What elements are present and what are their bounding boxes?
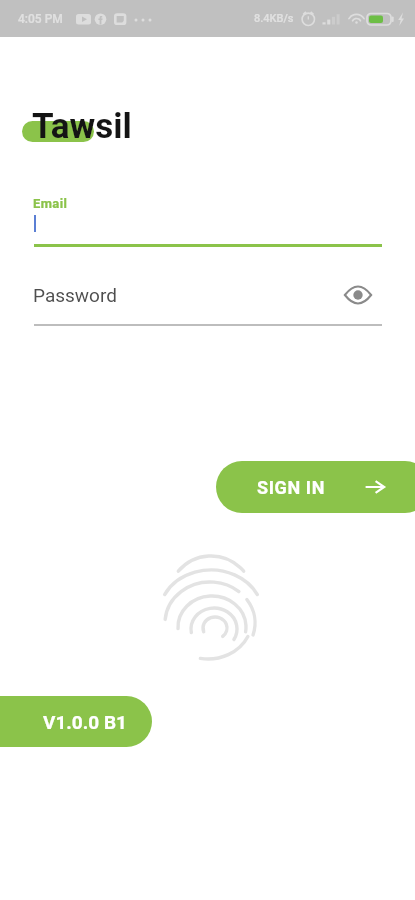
staticText: Password [33,284,117,306]
button[interactable]: Email [34,192,382,247]
staticText: V1.0.0 B1 [43,711,127,733]
button[interactable]: V1.0.0 B1 [0,696,152,747]
staticText: SIGN IN [257,477,325,498]
staticText: Tawsil [32,106,132,147]
button[interactable]: Show password [338,275,378,315]
staticText: Email [33,196,68,211]
button[interactable]: SIGN IN [216,461,415,513]
staticText: 8.4KB/s [254,12,294,25]
button[interactable]: Password [34,275,382,326]
staticText: 4:05 PM [18,12,63,26]
